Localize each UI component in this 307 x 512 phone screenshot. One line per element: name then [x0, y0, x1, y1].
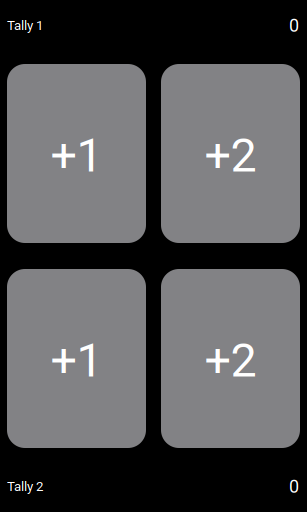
staticText: +2 — [204, 333, 256, 388]
staticText: 0 — [289, 476, 299, 497]
staticText: Tally 2 — [7, 479, 43, 494]
button[interactable]: +1 — [7, 269, 146, 448]
button[interactable]: +2 — [161, 269, 300, 448]
staticText: +1 — [50, 333, 102, 388]
button[interactable]: +2 — [161, 64, 300, 243]
staticText: 0 — [289, 15, 299, 36]
staticText: +1 — [50, 128, 102, 183]
staticText: Tally 1 — [7, 18, 43, 33]
staticText: +2 — [204, 128, 256, 183]
button[interactable]: +1 — [7, 64, 146, 243]
